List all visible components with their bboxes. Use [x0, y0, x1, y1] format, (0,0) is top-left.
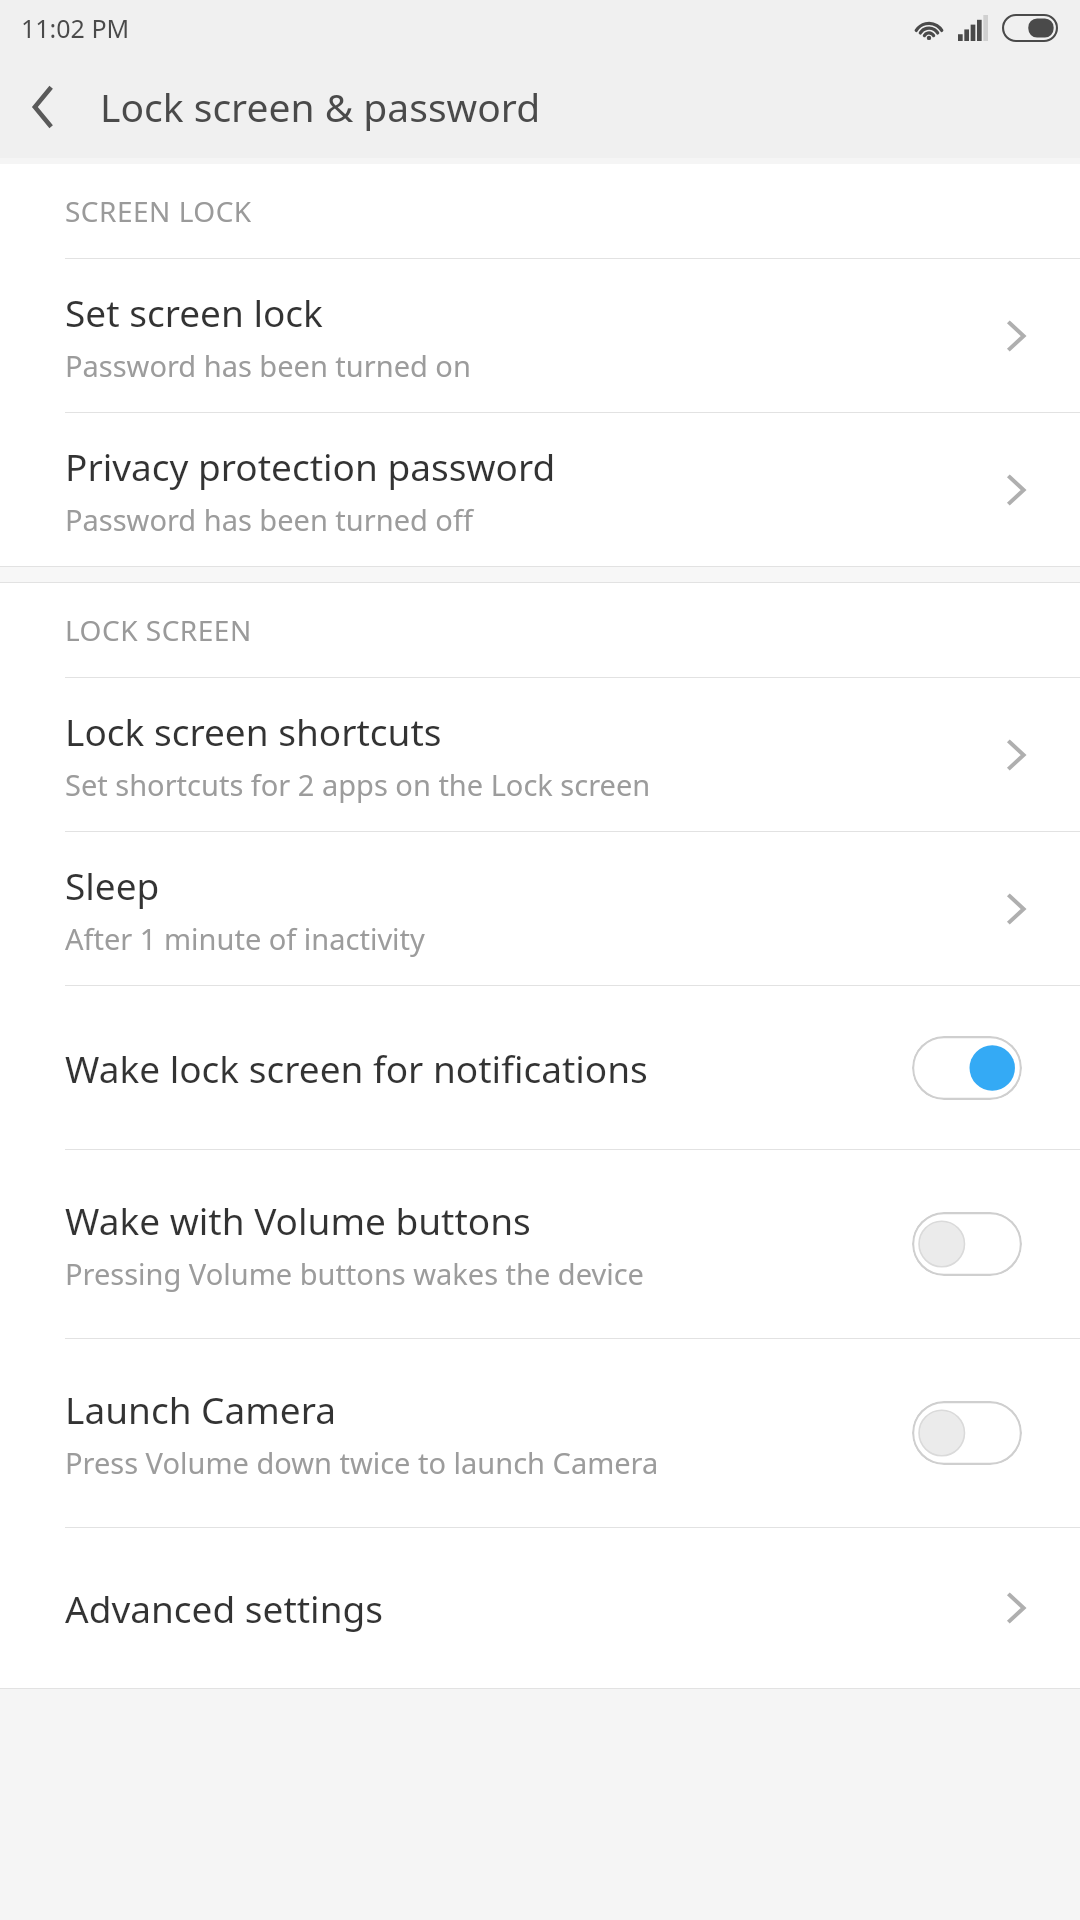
staticText: Password has been turned off: [65, 500, 473, 539]
button[interactable]: Off: [912, 1401, 1022, 1465]
staticText: Lock screen & password: [100, 80, 541, 133]
button[interactable]: Advanced settings: [0, 1528, 1080, 1688]
button[interactable]: Set screen lock: [0, 259, 1080, 412]
button[interactable]: Off: [912, 1212, 1022, 1276]
button[interactable]: Wake lock screen for notifications: [0, 986, 1080, 1149]
staticText: Lock screen shortcuts: [65, 706, 442, 756]
staticText: Launch Camera: [65, 1384, 337, 1434]
button[interactable]: Wake with Volume buttons: [0, 1150, 1080, 1338]
staticText: Advanced settings: [65, 1583, 384, 1633]
button[interactable]: Lock screen shortcuts: [0, 678, 1080, 831]
button[interactable]: Privacy protection password: [0, 413, 1080, 566]
staticText: Wake lock screen for notifications: [65, 1043, 648, 1093]
button[interactable]: Launch Camera: [0, 1339, 1080, 1527]
staticText: Password has been turned on: [65, 346, 471, 385]
staticText: Pressing Volume buttons wakes the device: [65, 1254, 644, 1293]
button[interactable]: Sleep: [0, 832, 1080, 985]
staticText: LOCK SCREEN: [65, 611, 252, 649]
staticText: Set screen lock: [65, 287, 323, 337]
staticText: Privacy protection password: [65, 441, 556, 491]
button[interactable]: On: [912, 1036, 1022, 1100]
staticText: 11:02 PM: [21, 11, 130, 45]
staticText: Sleep: [65, 860, 160, 910]
staticText: Wake with Volume buttons: [65, 1195, 531, 1245]
staticText: SCREEN LOCK: [65, 192, 252, 230]
button[interactable]: Back: [0, 64, 86, 150]
staticText: After 1 minute of inactivity: [65, 919, 425, 958]
staticText: Set shortcuts for 2 apps on the Lock scr…: [65, 765, 651, 804]
staticText: Press Volume down twice to launch Camera: [65, 1443, 659, 1482]
